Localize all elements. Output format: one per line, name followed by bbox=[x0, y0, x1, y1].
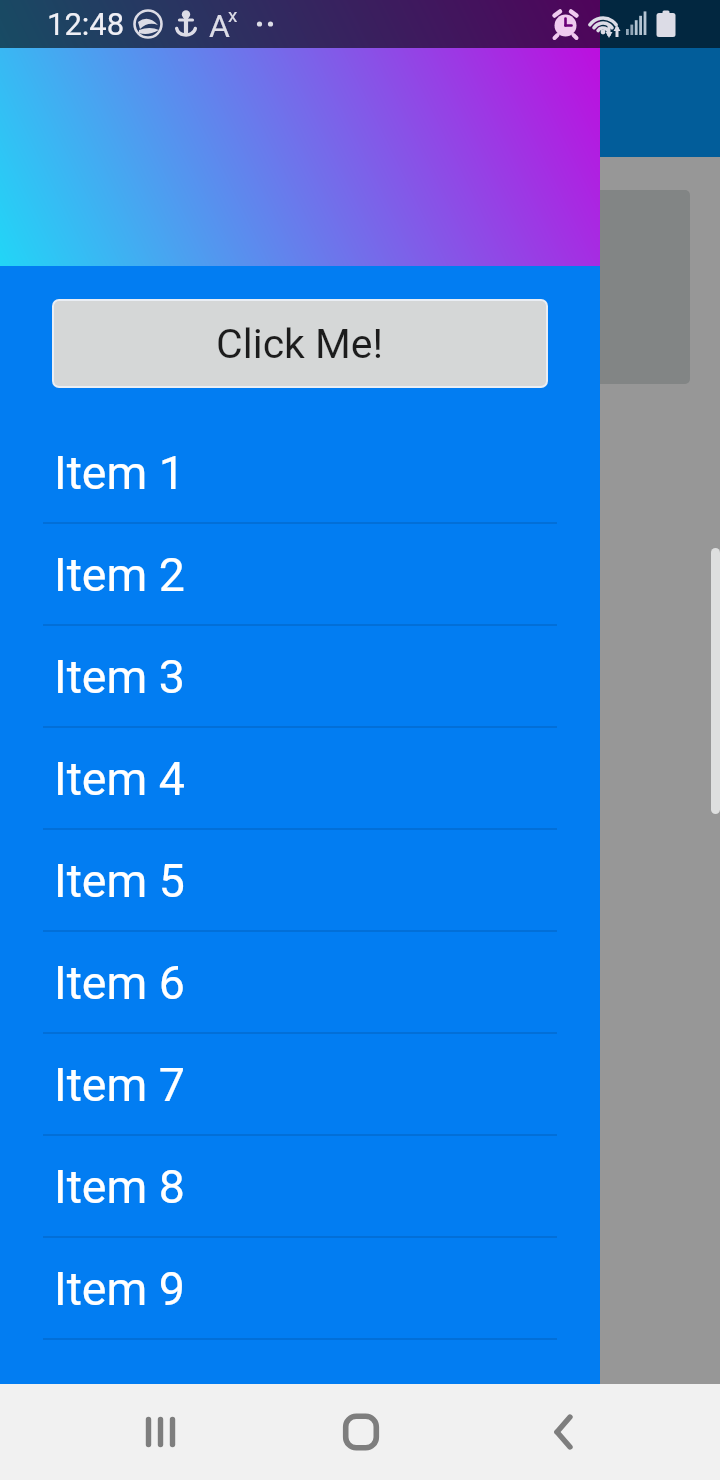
button[interactable]: Recent apps bbox=[113, 1384, 209, 1480]
staticText: Click Me! bbox=[216, 320, 384, 368]
staticText: Item 4 bbox=[54, 752, 185, 806]
button[interactable]: Item 7 bbox=[0, 1034, 600, 1136]
button[interactable]: Item 6 bbox=[0, 932, 600, 1034]
button[interactable]: Item 4 bbox=[0, 728, 600, 830]
staticText: Item 8 bbox=[54, 1160, 185, 1214]
button[interactable]: Item 5 bbox=[0, 830, 600, 932]
button[interactable]: Back bbox=[514, 1384, 610, 1480]
button[interactable]: Item 3 bbox=[0, 626, 600, 728]
staticText: Item 5 bbox=[54, 854, 185, 908]
staticText: Item 1 bbox=[54, 446, 185, 500]
button[interactable]: Item 9 bbox=[0, 1238, 600, 1340]
button[interactable]: Item 1 bbox=[0, 422, 600, 524]
staticText: Item 3 bbox=[54, 650, 185, 704]
staticText: x bbox=[228, 4, 238, 26]
staticText: 12:48 bbox=[47, 6, 125, 42]
staticText: A bbox=[209, 7, 230, 45]
button[interactable]: Click Me! bbox=[54, 301, 546, 386]
staticText: Item 6 bbox=[54, 956, 185, 1010]
button[interactable]: Item 2 bbox=[0, 524, 600, 626]
button[interactable]: Item 8 bbox=[0, 1136, 600, 1238]
button[interactable]: Home bbox=[313, 1384, 409, 1480]
staticText: Item 9 bbox=[54, 1262, 185, 1316]
staticText: Item 7 bbox=[54, 1058, 185, 1112]
staticText: Item 2 bbox=[54, 548, 185, 602]
